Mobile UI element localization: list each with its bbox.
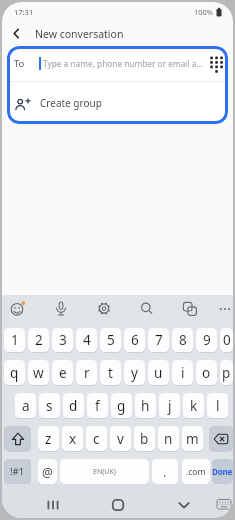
button[interactable] bbox=[214, 494, 233, 514]
button[interactable]: c bbox=[86, 426, 107, 451]
button[interactable]: q bbox=[4, 360, 25, 385]
staticText: 1 bbox=[11, 331, 19, 349]
staticText: a bbox=[22, 397, 30, 415]
button[interactable]: . bbox=[152, 459, 178, 484]
staticText: 2 bbox=[35, 331, 43, 349]
staticText: e bbox=[59, 364, 67, 382]
button[interactable]: n bbox=[158, 426, 179, 451]
button[interactable]: y bbox=[124, 360, 145, 385]
button[interactable]: 9 bbox=[196, 328, 217, 352]
button[interactable]: .com bbox=[182, 459, 210, 484]
button[interactable]: j bbox=[159, 393, 180, 418]
staticText: 0 bbox=[223, 331, 231, 349]
staticText: Create group bbox=[40, 96, 102, 110]
staticText: y bbox=[131, 364, 138, 382]
staticText: g bbox=[117, 397, 126, 415]
button[interactable]: e bbox=[52, 360, 73, 385]
button[interactable] bbox=[6, 297, 30, 321]
button[interactable]: !#1 bbox=[4, 459, 31, 484]
staticText: 100% bbox=[194, 7, 214, 17]
button[interactable]: f bbox=[87, 393, 108, 418]
button[interactable]: 4 bbox=[76, 328, 97, 352]
button[interactable]: r bbox=[76, 360, 97, 385]
staticText: Type a name, phone number or email a... bbox=[43, 58, 206, 69]
button[interactable]: p bbox=[220, 360, 233, 385]
button[interactable]: t bbox=[100, 360, 121, 385]
button[interactable]: 7 bbox=[148, 328, 169, 352]
button[interactable] bbox=[178, 297, 202, 321]
staticText: !#1 bbox=[10, 465, 25, 478]
staticText: . bbox=[163, 464, 167, 480]
button[interactable]: d bbox=[63, 393, 84, 418]
staticText: j bbox=[168, 397, 172, 415]
button[interactable]: @ bbox=[38, 459, 57, 484]
staticText: @ bbox=[42, 464, 53, 480]
button[interactable] bbox=[172, 493, 195, 516]
button[interactable]: 8 bbox=[172, 328, 193, 352]
button[interactable] bbox=[2, 22, 30, 45]
staticText: h bbox=[141, 397, 150, 415]
staticText: 9 bbox=[203, 331, 211, 349]
button[interactable]: 5 bbox=[100, 328, 121, 352]
button[interactable] bbox=[92, 297, 116, 321]
staticText: 6 bbox=[131, 331, 139, 349]
staticText: k bbox=[190, 397, 198, 415]
button[interactable]: o bbox=[196, 360, 217, 385]
button[interactable]: b bbox=[134, 426, 155, 451]
button[interactable]: x bbox=[62, 426, 83, 451]
button[interactable] bbox=[106, 493, 129, 516]
staticText: s bbox=[46, 397, 53, 415]
staticText: d bbox=[69, 397, 78, 415]
button[interactable]: v bbox=[110, 426, 131, 451]
button[interactable] bbox=[206, 46, 228, 81]
staticText: i bbox=[181, 364, 185, 382]
button[interactable]: To bbox=[7, 46, 228, 81]
staticText: c bbox=[93, 430, 100, 448]
staticText: x bbox=[69, 430, 77, 448]
button[interactable]: i bbox=[172, 360, 193, 385]
staticText: New conversation bbox=[35, 27, 124, 41]
staticText: l bbox=[216, 397, 220, 415]
staticText: t bbox=[108, 364, 113, 382]
staticText: p bbox=[222, 364, 231, 382]
button[interactable]: Done bbox=[212, 459, 233, 484]
button[interactable]: u bbox=[148, 360, 169, 385]
button[interactable] bbox=[41, 493, 64, 516]
button[interactable]: Create group bbox=[7, 82, 228, 124]
button[interactable]: w bbox=[28, 360, 49, 385]
button[interactable]: EN(UK) bbox=[60, 459, 149, 484]
staticText: Done bbox=[212, 466, 233, 477]
button[interactable]: s bbox=[39, 393, 60, 418]
staticText: 17:31 bbox=[14, 7, 34, 17]
staticText: 5 bbox=[107, 331, 115, 349]
button[interactable] bbox=[135, 297, 159, 321]
button[interactable]: 6 bbox=[124, 328, 145, 352]
staticText: z bbox=[45, 430, 52, 448]
button[interactable] bbox=[49, 297, 73, 321]
button[interactable]: m bbox=[182, 426, 203, 451]
staticText: r bbox=[84, 364, 90, 382]
staticText: o bbox=[202, 364, 211, 382]
button[interactable]: z bbox=[38, 426, 59, 451]
button[interactable] bbox=[209, 426, 233, 451]
button[interactable]: k bbox=[183, 393, 204, 418]
staticText: b bbox=[140, 430, 149, 448]
staticText: f bbox=[95, 397, 100, 415]
staticText: v bbox=[117, 430, 124, 448]
staticText: m bbox=[186, 430, 199, 448]
button[interactable]: 2 bbox=[28, 328, 49, 352]
button[interactable]: 1 bbox=[4, 328, 25, 352]
button[interactable]: a bbox=[15, 393, 36, 418]
staticText: 7 bbox=[155, 331, 163, 349]
button[interactable] bbox=[213, 297, 233, 321]
button[interactable]: h bbox=[135, 393, 156, 418]
staticText: n bbox=[164, 430, 173, 448]
button[interactable] bbox=[4, 426, 31, 451]
button[interactable]: 0 bbox=[220, 328, 233, 352]
button[interactable]: l bbox=[207, 393, 228, 418]
button[interactable]: 3 bbox=[52, 328, 73, 352]
button[interactable]: g bbox=[111, 393, 132, 418]
staticText: 4 bbox=[83, 331, 91, 349]
staticText: 3 bbox=[59, 331, 67, 349]
staticText: 8 bbox=[179, 331, 187, 349]
